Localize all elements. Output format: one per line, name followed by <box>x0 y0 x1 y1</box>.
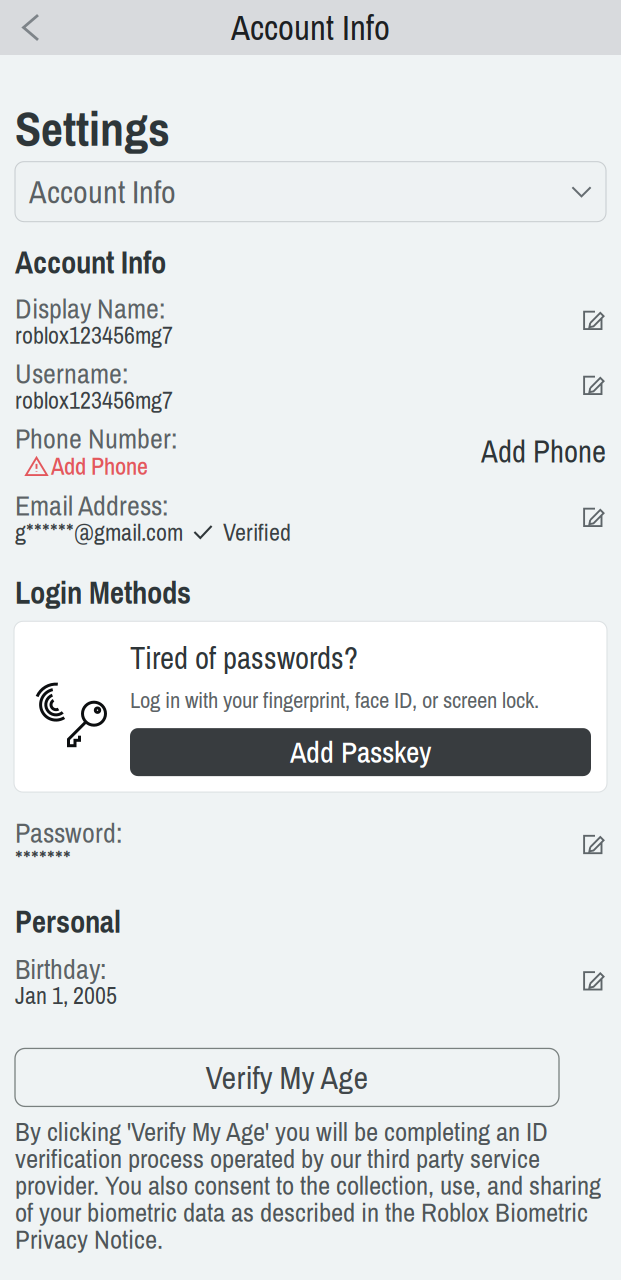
staticText: roblox123456mg7 <box>15 319 173 351</box>
staticText: By clicking 'Verify My Age' you will be … <box>15 1113 601 1257</box>
button[interactable]: Edit Password: <box>582 833 606 857</box>
button[interactable]: Edit email address <box>582 505 606 529</box>
button[interactable]: Edit Username: <box>582 373 606 397</box>
staticText: Personal <box>15 901 121 942</box>
staticText: Add Passkey <box>290 732 431 772</box>
staticText: Jan 1, 2005 <box>15 979 117 1012</box>
button[interactable]: Edit Display Name: <box>582 308 606 332</box>
staticText: Account Info <box>15 242 166 283</box>
staticText: Log in with your fingerprint, face ID, o… <box>130 685 539 715</box>
button[interactable]: Add Phone <box>481 431 606 472</box>
button[interactable]: Edit Birthday: <box>582 969 606 993</box>
staticText: Verified <box>223 516 291 548</box>
staticText: Display Name: <box>15 290 165 327</box>
staticText: Tired of passwords? <box>130 637 358 679</box>
staticText: g******@gmail.com <box>15 516 183 548</box>
staticText: Email Address: <box>15 487 168 524</box>
staticText: Password: <box>15 814 122 851</box>
staticText: Username: <box>15 355 128 392</box>
staticText: ******* <box>15 843 71 875</box>
button[interactable]: Add Passkey <box>130 728 591 776</box>
staticText: Add Phone <box>481 431 606 472</box>
staticText: Add Phone <box>51 450 148 482</box>
button[interactable]: Verify My Age <box>15 1048 559 1106</box>
staticText: roblox123456mg7 <box>15 384 173 416</box>
staticText: Verify My Age <box>205 1056 368 1099</box>
staticText: Settings <box>15 96 170 161</box>
button[interactable]: Back <box>0 0 62 54</box>
staticText: Birthday: <box>15 950 106 988</box>
button[interactable]: Account Info <box>15 162 606 222</box>
staticText: Account Info <box>231 4 390 51</box>
staticText: Phone Number: <box>15 420 177 457</box>
staticText: Login Methods <box>15 572 191 613</box>
staticText: Account Info <box>29 170 176 213</box>
